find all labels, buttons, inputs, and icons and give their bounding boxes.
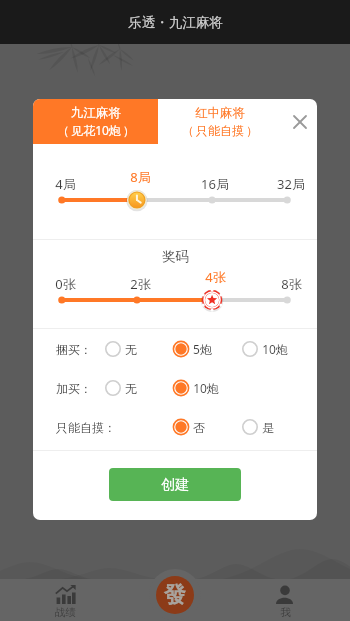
staticText: 0张 (55, 275, 76, 293)
button[interactable]: 红中麻将 (158, 99, 282, 144)
staticText: 九江麻将 (71, 105, 121, 121)
staticText: 是 (262, 420, 274, 435)
staticText: 加买： (56, 381, 92, 396)
staticText: 10炮 (262, 341, 288, 357)
button[interactable]: 10炮 (172, 376, 219, 400)
staticText: 无 (125, 381, 137, 396)
staticText: 16局 (201, 175, 229, 193)
staticText: 红中麻将 (195, 105, 245, 121)
button[interactable]: 我 (262, 579, 308, 621)
staticText: 8张 (281, 275, 302, 293)
button[interactable]: 无 (104, 337, 137, 361)
button[interactable]: 10炮 (241, 337, 288, 361)
staticText: 战绩 (55, 606, 76, 619)
staticText: 我 (280, 606, 291, 619)
staticText: 10炮 (193, 380, 219, 396)
staticText: 發 (164, 581, 186, 609)
button[interactable]: 无 (104, 376, 137, 400)
button[interactable]: 关闭 (282, 99, 317, 144)
staticText: 8局 (130, 168, 151, 186)
staticText: 乐透・九江麻将 (128, 14, 223, 31)
staticText: 无 (125, 342, 137, 357)
staticText: （ 只能自摸 ） (182, 122, 258, 138)
staticText: 2张 (130, 275, 151, 293)
staticText: 只能自摸： (56, 420, 116, 435)
staticText: （ 见花10炮 ） (57, 122, 135, 138)
staticText: 5炮 (193, 341, 212, 357)
button[interactable]: 创建 (109, 468, 241, 501)
staticText: 否 (193, 420, 205, 435)
button[interactable]: 发牌 (156, 576, 194, 614)
button[interactable]: 战绩 (42, 579, 88, 621)
button[interactable]: 否 (172, 415, 205, 439)
staticText: 4局 (55, 175, 76, 193)
staticText: 奖码 (162, 248, 189, 265)
button[interactable]: 是 (241, 415, 274, 439)
staticText: 4张 (205, 268, 226, 286)
staticText: 32局 (277, 175, 305, 193)
staticText: 捆买： (56, 342, 92, 357)
staticText: 创建 (161, 476, 189, 494)
button[interactable]: 5炮 (172, 337, 212, 361)
button[interactable]: 九江麻将 (33, 99, 158, 144)
